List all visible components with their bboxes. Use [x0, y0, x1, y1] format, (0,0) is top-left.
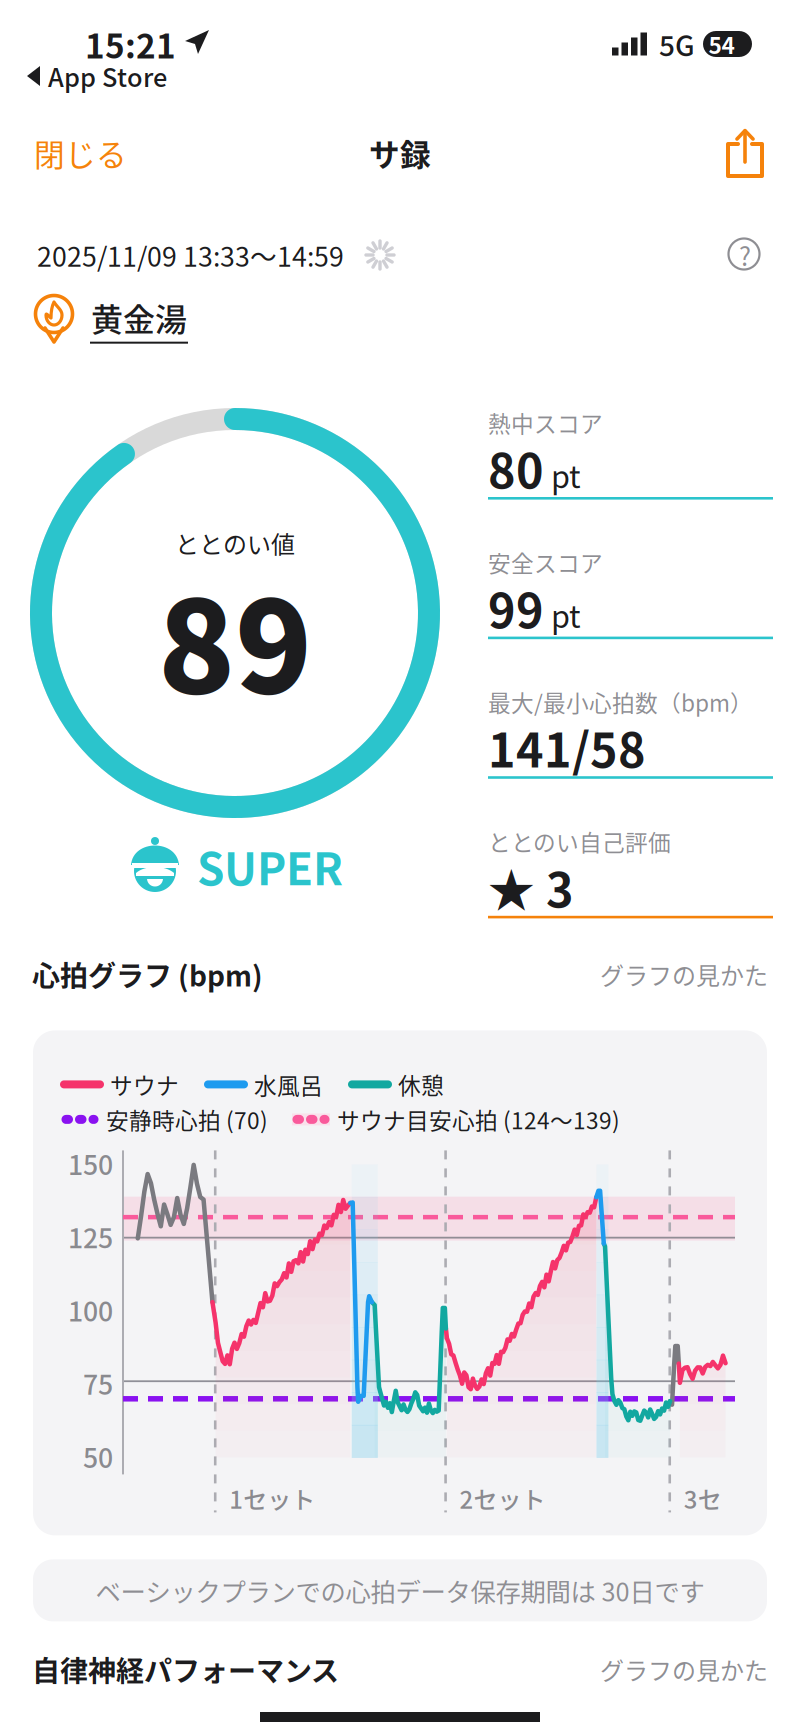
staticText: 75 [83, 1364, 113, 1402]
staticText: ベーシックプランでの心拍データ保存期間は 30日です [95, 1572, 704, 1609]
staticText: 3セ [684, 1481, 722, 1516]
staticText: サ録 [369, 131, 431, 175]
staticText: 99 [488, 574, 544, 641]
staticText: App Store [48, 58, 167, 94]
staticText: 水風呂 [254, 1068, 323, 1101]
staticText: 141/58 [488, 713, 646, 781]
staticText: 熱中スコア [488, 406, 603, 439]
button[interactable]: Back to App Store [27, 59, 167, 93]
staticText: 100 [68, 1291, 113, 1329]
staticText: 15:21 [85, 20, 176, 68]
staticText: 50 [83, 1437, 113, 1476]
staticText: 80 [488, 434, 544, 502]
staticText: SUPER [197, 834, 343, 898]
staticText: 2セット [460, 1481, 546, 1516]
staticText: 150 [68, 1144, 113, 1183]
staticText: 安静時心拍 (70) [106, 1103, 268, 1136]
staticText: ととのい自己評価 [488, 825, 671, 858]
staticText: 2025/11/09 13:33〜14:59 [37, 236, 344, 274]
staticText: ? [739, 237, 751, 273]
staticText: 54 [708, 28, 734, 60]
button[interactable]: 黄金湯 [32, 293, 188, 345]
staticText: 心拍グラフ (bpm) [32, 954, 263, 995]
staticText: 自律神経パフォーマンス [32, 1649, 339, 1690]
staticText: グラフの見かた [600, 1652, 768, 1687]
staticText: ★ 3 [488, 853, 574, 921]
staticText: グラフの見かた [600, 957, 768, 992]
staticText: 安全スコア [488, 546, 603, 579]
staticText: 黄金湯 [91, 294, 187, 341]
staticText: 1セット [229, 1481, 315, 1516]
button[interactable]: Help [727, 237, 763, 273]
staticText: 5G [659, 24, 695, 64]
staticText: サウナ [110, 1068, 179, 1101]
staticText: ととのい値 [175, 526, 295, 560]
staticText: pt [551, 592, 581, 637]
button[interactable]: グラフの見かた [600, 1652, 768, 1687]
staticText: 89 [158, 546, 312, 730]
staticText: サウナ目安心拍 (124〜139) [337, 1103, 620, 1136]
button[interactable]: 閉じる [34, 115, 194, 191]
button[interactable]: Share [606, 115, 766, 191]
staticText: pt [551, 453, 581, 497]
staticText: 休憩 [398, 1068, 444, 1101]
staticText: 閉じる [34, 131, 127, 175]
button[interactable]: グラフの見かた [600, 957, 768, 992]
staticText: 最大/最小心拍数（bpm） [488, 685, 753, 718]
staticText: 125 [68, 1217, 113, 1256]
